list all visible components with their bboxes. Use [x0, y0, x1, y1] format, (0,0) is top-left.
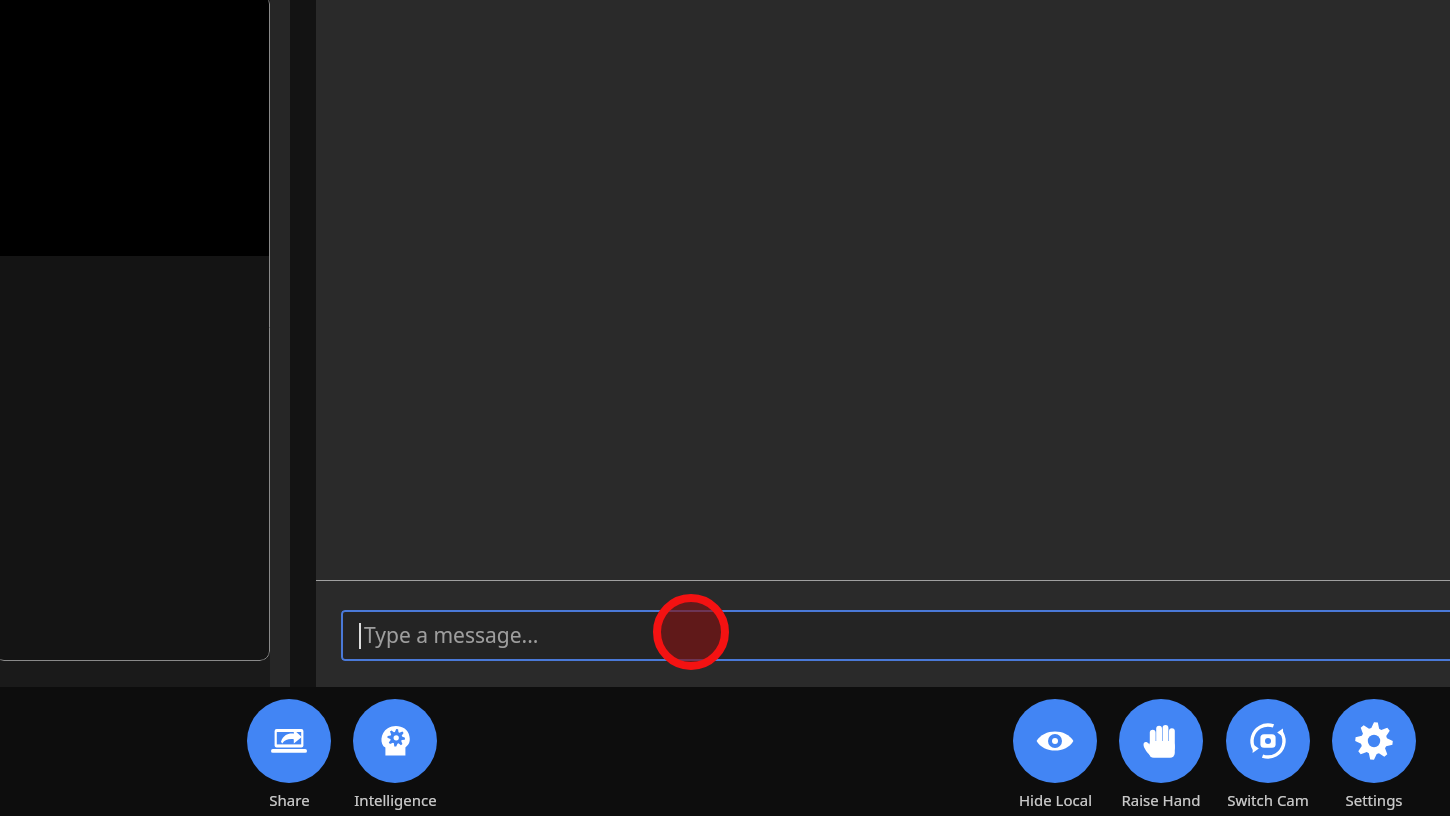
staticText: Hide Local	[1019, 790, 1092, 810]
button[interactable]: Switch Cam	[1226, 699, 1310, 810]
button[interactable]: Local video	[0, 0, 270, 661]
staticText: Raise Hand	[1121, 790, 1201, 810]
button[interactable]: Raise Hand	[1119, 699, 1203, 810]
staticText: Type a message...	[364, 621, 539, 650]
staticText: Settings	[1345, 790, 1403, 810]
staticText: Switch Cam	[1227, 790, 1309, 810]
button[interactable]: Type a message...	[341, 610, 1450, 661]
staticText: Intelligence	[354, 790, 437, 810]
staticText: Share	[269, 790, 310, 810]
button[interactable]: Hide Local	[1013, 699, 1097, 810]
button[interactable]: Intelligence	[353, 699, 437, 810]
button[interactable]: Share	[247, 699, 331, 810]
button[interactable]: Settings	[1332, 699, 1416, 810]
